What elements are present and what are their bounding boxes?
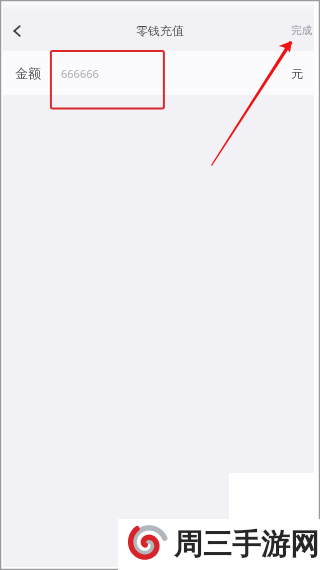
staticText: 666666 xyxy=(61,66,99,81)
staticText: 完成 xyxy=(291,24,312,37)
staticText: 周三手游网 xyxy=(174,526,319,563)
button[interactable]: 完成 xyxy=(281,19,320,42)
staticText: 零钱充值 xyxy=(136,23,184,38)
staticText: 元 xyxy=(291,66,303,81)
button[interactable]: Back xyxy=(3,17,31,45)
staticText: 金额 xyxy=(15,65,41,81)
